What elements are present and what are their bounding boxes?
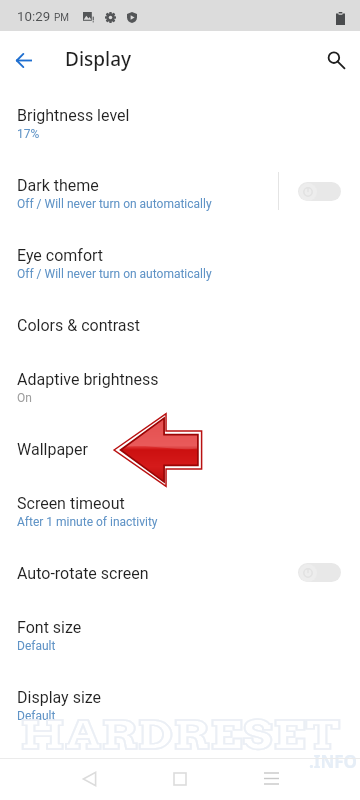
staticText: 17% [17, 127, 40, 141]
staticText: Off / Will never turn on automatically [17, 267, 212, 281]
staticText: Brightness level [17, 106, 130, 125]
staticText: Dark theme [17, 176, 99, 195]
staticText: Off / Will never turn on automatically [17, 197, 212, 211]
staticText: Screen timeout [17, 494, 125, 513]
button[interactable]: Auto-rotate screen [0, 545, 360, 599]
staticText: HARDRESET [0, 712, 360, 759]
button[interactable]: Toggle Dark theme [298, 182, 341, 201]
staticText: .INFO [309, 750, 357, 773]
staticText: Display size [17, 688, 102, 707]
button[interactable]: Recent apps [250, 758, 292, 799]
staticText: Font size [17, 618, 82, 637]
button[interactable]: Back [68, 758, 110, 799]
staticText: Default [17, 639, 56, 653]
staticText: Auto-rotate screen [17, 564, 149, 583]
staticText: After 1 minute of inactivity [17, 515, 158, 529]
staticText: Display [65, 46, 132, 72]
staticText: Wallpaper [17, 440, 88, 459]
button[interactable]: Navigate up [4, 40, 44, 80]
staticText: Default [17, 709, 56, 723]
button[interactable]: Toggle Auto-rotate screen [298, 563, 341, 582]
staticText: Colors & contrast [17, 316, 140, 335]
button[interactable]: Display size [0, 669, 360, 739]
button[interactable]: Font size [0, 599, 360, 669]
staticText: PM [54, 12, 70, 24]
button[interactable]: Brightness level [0, 87, 360, 157]
staticText: Adaptive brightness [17, 370, 159, 389]
button[interactable]: Wallpaper [0, 421, 360, 475]
button[interactable]: Eye comfort [0, 227, 360, 297]
staticText: Eye comfort [17, 246, 104, 265]
button[interactable]: Search [317, 41, 357, 81]
staticText: On [17, 391, 32, 405]
button[interactable]: Screen timeout [0, 475, 360, 545]
button[interactable]: Home [159, 758, 201, 799]
staticText: 10:29 [17, 9, 51, 25]
button[interactable]: Dark theme [0, 157, 360, 227]
button[interactable]: Adaptive brightness [0, 351, 360, 421]
button[interactable]: Colors & contrast [0, 297, 360, 351]
